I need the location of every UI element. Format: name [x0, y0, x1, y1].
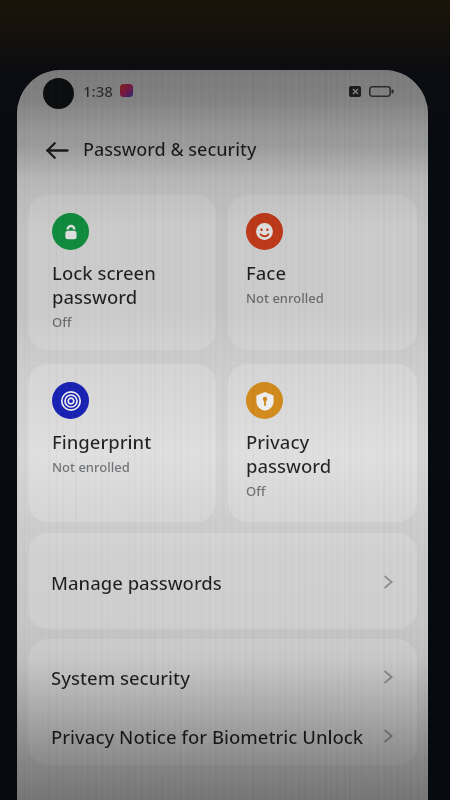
staticText: Not enrolled: [52, 458, 130, 476]
staticText: Privacy password: [246, 429, 332, 478]
staticText: Face: [246, 260, 287, 285]
staticText: Off: [52, 313, 72, 331]
staticText: Password & security: [83, 137, 257, 162]
staticText: Off: [246, 482, 266, 500]
staticText: Privacy Notice for Biometric Unlock: [51, 724, 364, 749]
button[interactable]: System security: [28, 647, 417, 707]
button[interactable]: Back: [43, 136, 71, 164]
staticText: 1:38: [83, 81, 113, 101]
staticText: Fingerprint: [52, 429, 152, 454]
staticText: System security: [51, 665, 190, 690]
button[interactable]: Privacy Notice for Biometric Unlock: [28, 707, 417, 765]
button[interactable]: Face: [228, 195, 417, 350]
button[interactable]: Privacy password: [228, 364, 417, 522]
staticText: Lock screen password: [52, 260, 156, 309]
button[interactable]: Manage passwords: [28, 533, 417, 629]
button[interactable]: Lock screen password: [28, 195, 216, 350]
staticText: Not enrolled: [246, 289, 324, 307]
button[interactable]: Fingerprint: [28, 364, 216, 522]
staticText: Manage passwords: [51, 570, 222, 595]
